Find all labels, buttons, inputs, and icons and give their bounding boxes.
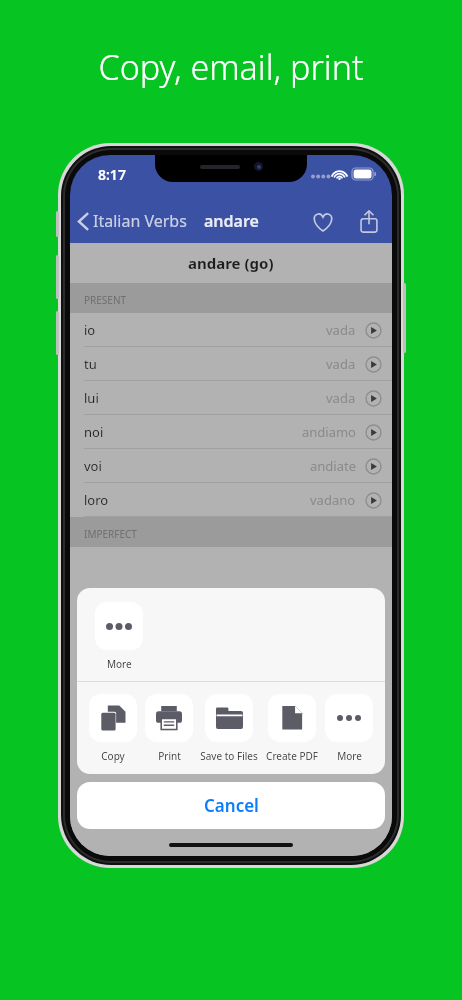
staticText: vada [326,321,356,339]
button[interactable]: loro [70,483,392,517]
button[interactable]: Favorite [304,204,342,240]
button[interactable]: Play [365,458,382,475]
button[interactable]: Share [352,202,392,241]
button[interactable]: Cancel [77,782,385,829]
staticText: vada [326,389,356,407]
staticText: vadano [310,491,356,509]
staticText: voi [84,457,102,475]
staticText: Create PDF [266,749,318,763]
staticText: andiate [310,457,356,475]
staticText: io [84,321,96,339]
staticText: 8:17 [98,165,126,184]
staticText: andare [204,210,259,232]
button[interactable]: Create PDF [264,694,320,763]
staticText: Copy, email, print [98,44,364,90]
staticText: andare (go) [188,253,274,273]
staticText: Copy [101,749,125,763]
staticText: Cancel [204,794,259,817]
staticText: IMPERFECT [84,527,137,541]
button[interactable]: More [323,694,375,763]
staticText: More [337,749,362,763]
button[interactable]: Save to Files [198,694,260,763]
staticText: More [107,657,132,671]
staticText: Print [158,749,181,763]
staticText: andiamo [302,423,356,441]
button[interactable]: Play [365,424,382,441]
button[interactable]: Play [365,492,382,509]
button[interactable]: Copy [87,694,139,763]
button[interactable]: io [70,313,392,347]
button[interactable]: lui [70,381,392,415]
staticText: Italian Verbs [93,210,187,232]
button[interactable]: Play [365,356,382,373]
button[interactable]: More [95,602,143,671]
button[interactable]: Play [365,390,382,407]
button[interactable]: Italian Verbs [70,204,195,238]
staticText: lui [84,389,99,407]
button[interactable]: Print [143,694,195,763]
button[interactable]: noi [70,415,392,449]
staticText: noi [84,423,104,441]
staticText: PRESENT [84,293,127,307]
staticText: loro [84,491,109,509]
button[interactable]: Play [365,322,382,339]
button[interactable]: voi [70,449,392,483]
staticText: tu [84,355,97,373]
button[interactable]: tu [70,347,392,381]
staticText: Save to Files [200,749,258,763]
staticText: vada [326,355,356,373]
